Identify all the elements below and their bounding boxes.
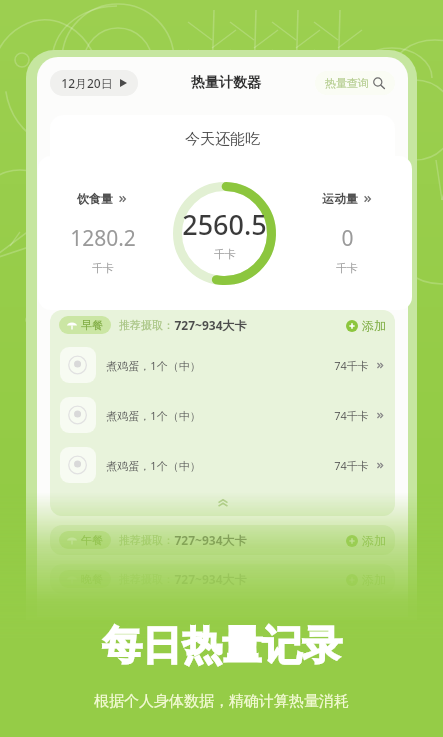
button[interactable]: 午餐: [50, 525, 395, 555]
staticText: 74千卡: [334, 358, 369, 373]
button[interactable]: 煮鸡蛋，1个（中）: [50, 440, 395, 490]
staticText: 千卡: [214, 247, 236, 261]
staticText: 74千卡: [334, 408, 369, 423]
button[interactable]: 添加: [346, 533, 386, 548]
staticText: 每日热量记录: [102, 620, 342, 670]
staticText: 727~934大卡: [174, 571, 247, 587]
button[interactable]: [50, 490, 395, 516]
staticText: 煮鸡蛋，1个（中）: [106, 358, 201, 373]
button[interactable]: 饮食量: [38, 191, 167, 275]
staticText: 千卡: [336, 261, 358, 275]
staticText: 煮鸡蛋，1个（中）: [106, 458, 201, 473]
button[interactable]: 热量查询: [315, 71, 395, 95]
staticText: 1280.2: [70, 224, 136, 253]
staticText: 2560.5: [182, 206, 267, 243]
staticText: 运动量: [322, 191, 358, 206]
staticText: 727~934大卡: [174, 532, 247, 548]
staticText: 今天还能吃: [185, 130, 260, 149]
button[interactable]: 早餐: [50, 310, 395, 340]
staticText: 添加: [362, 318, 386, 333]
staticText: 727~934大卡: [174, 317, 247, 333]
staticText: 推荐摄取：: [119, 533, 174, 547]
staticText: 热量计数器: [191, 74, 261, 92]
staticText: 煮鸡蛋，1个（中）: [106, 408, 201, 423]
staticText: 推荐摄取：: [119, 572, 174, 586]
button[interactable]: 添加: [346, 318, 386, 333]
button[interactable]: 煮鸡蛋，1个（中）: [50, 340, 395, 390]
staticText: 晚餐: [81, 572, 103, 586]
button[interactable]: 添加: [346, 572, 386, 587]
staticText: 饮食量: [77, 191, 113, 206]
staticText: 千卡: [92, 261, 114, 275]
staticText: 74千卡: [334, 458, 369, 473]
staticText: 热量查询: [325, 76, 369, 90]
staticText: 午餐: [81, 533, 103, 547]
button[interactable]: 12月20日: [50, 70, 138, 96]
staticText: 添加: [362, 572, 386, 587]
button[interactable]: 煮鸡蛋，1个（中）: [50, 390, 395, 440]
button[interactable]: 运动量: [282, 191, 412, 275]
staticText: 根据个人身体数据，精确计算热量消耗: [94, 692, 349, 711]
staticText: 0: [341, 224, 354, 253]
staticText: 早餐: [81, 318, 103, 332]
staticText: 添加: [362, 533, 386, 548]
staticText: 推荐摄取：: [119, 318, 174, 332]
staticText: 12月20日: [61, 75, 113, 91]
button[interactable]: 晚餐: [50, 564, 395, 594]
